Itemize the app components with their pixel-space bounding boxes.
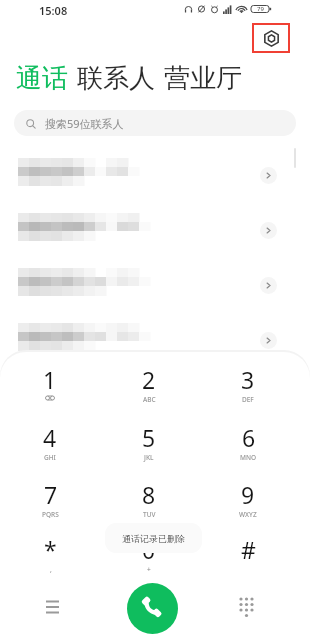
button[interactable]: Keypad: [228, 588, 264, 624]
button[interactable]: #: [215, 534, 281, 582]
button[interactable]: Call: [127, 583, 178, 634]
staticText: 营业厅: [164, 62, 242, 95]
staticText: WXYZ: [239, 510, 257, 519]
staticText: TUV: [143, 510, 156, 519]
staticText: 4: [43, 422, 57, 453]
staticText: 8: [142, 479, 156, 510]
staticText: 2: [142, 364, 156, 395]
staticText: 6: [242, 422, 256, 453]
button[interactable]: 8: [116, 479, 182, 527]
button[interactable]: Settings: [252, 23, 290, 53]
staticText: MNO: [240, 453, 257, 462]
button[interactable]: 3: [215, 364, 281, 412]
staticText: 1: [43, 364, 57, 395]
button[interactable]: 6: [215, 422, 281, 470]
button[interactable]: [0, 267, 310, 322]
staticText: 5: [142, 422, 156, 453]
staticText: ABC: [143, 395, 156, 404]
button[interactable]: *: [17, 534, 83, 582]
staticText: PQRS: [42, 510, 59, 519]
staticText: 9: [241, 479, 255, 510]
staticText: JKL: [144, 453, 154, 462]
button[interactable]: 营业厅: [164, 62, 242, 95]
staticText: 3: [241, 364, 255, 395]
staticText: 79: [257, 5, 264, 13]
staticText: 通话记录已删除: [122, 533, 185, 544]
staticText: 搜索59位联系人: [45, 116, 124, 131]
button[interactable]: 9: [215, 479, 281, 527]
button[interactable]: [0, 322, 310, 377]
button[interactable]: 0: [116, 534, 182, 582]
staticText: ,: [50, 565, 52, 574]
staticText: 通话: [16, 62, 68, 95]
button[interactable]: 5: [116, 422, 182, 470]
staticText: DEF: [242, 395, 254, 404]
staticText: #: [241, 534, 256, 565]
staticText: *: [44, 534, 57, 565]
button[interactable]: 联系人: [77, 62, 155, 95]
button[interactable]: [0, 157, 310, 212]
button[interactable]: 1: [17, 364, 83, 412]
button[interactable]: 4: [17, 422, 83, 470]
staticText: 联系人: [77, 62, 155, 95]
staticText: 0: [142, 534, 156, 565]
button[interactable]: 通话: [16, 62, 68, 95]
staticText: 7: [44, 479, 58, 510]
button[interactable]: 2: [116, 364, 182, 412]
button[interactable]: [0, 212, 310, 267]
staticText: GHI: [44, 453, 56, 462]
button[interactable]: Call log: [34, 588, 70, 624]
button[interactable]: 搜索59位联系人: [14, 110, 296, 136]
button[interactable]: 7: [17, 479, 83, 527]
staticText: 15:08: [39, 3, 68, 18]
staticText: +: [147, 565, 151, 574]
